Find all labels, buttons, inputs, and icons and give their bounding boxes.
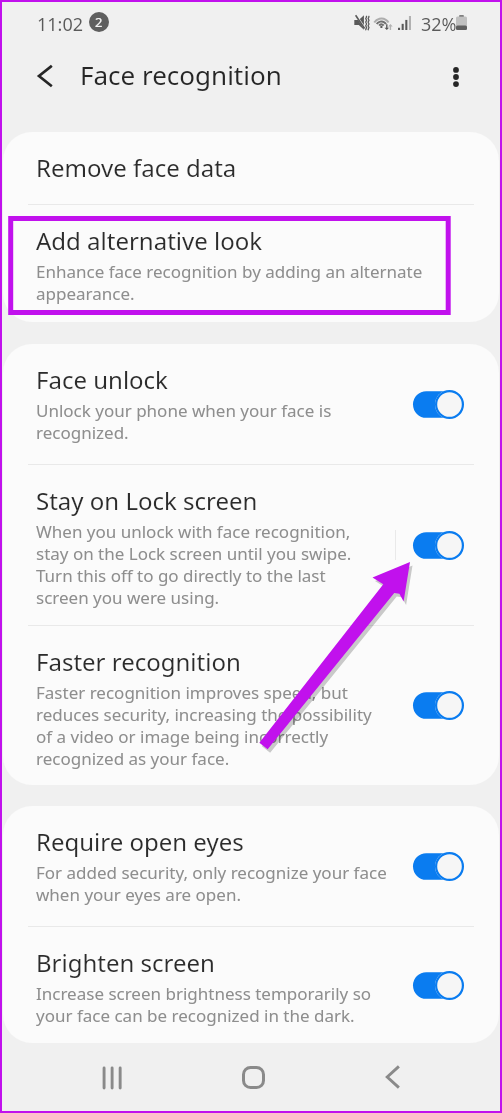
staticText: Enhance face recognition by adding an al… bbox=[36, 261, 423, 305]
button[interactable]: Face unlock bbox=[3, 344, 499, 464]
staticText: Remove face data bbox=[36, 155, 237, 183]
staticText: Unlock your phone when your face is reco… bbox=[36, 400, 332, 444]
staticText: Add alternative look bbox=[36, 228, 263, 256]
button[interactable]: Stay on Lock screen bbox=[3, 465, 499, 625]
staticText: Brighten screen bbox=[36, 950, 215, 978]
button[interactable]: Toggle switch, on bbox=[413, 691, 464, 720]
staticText: Faster recognition improves speed, but r… bbox=[36, 682, 372, 770]
button[interactable]: Toggle switch, on bbox=[413, 971, 464, 1000]
button[interactable]: Require open eyes bbox=[3, 806, 499, 926]
staticText: When you unlock with face recognition, s… bbox=[36, 521, 352, 609]
button[interactable]: More options bbox=[434, 55, 478, 99]
button[interactable]: Toggle switch, on bbox=[413, 390, 464, 419]
staticText: 32% bbox=[421, 12, 457, 37]
button[interactable]: Remove face data bbox=[3, 132, 499, 204]
staticText: Stay on Lock screen bbox=[36, 488, 258, 516]
button[interactable]: Toggle switch, on bbox=[413, 852, 464, 881]
staticText: 2 bbox=[95, 13, 103, 31]
button[interactable]: Faster recognition bbox=[3, 626, 499, 785]
staticText: Require open eyes bbox=[36, 829, 244, 857]
button[interactable]: Navigate up bbox=[23, 54, 67, 98]
staticText: Face unlock bbox=[36, 367, 168, 395]
button[interactable]: Home bbox=[231, 1055, 275, 1099]
button[interactable]: Recent apps bbox=[90, 1056, 134, 1100]
staticText: For added security, only recognize your … bbox=[36, 862, 387, 906]
button[interactable]: Add alternative look bbox=[3, 205, 499, 322]
staticText: Faster recognition bbox=[36, 649, 241, 677]
staticText: 11:02 bbox=[37, 12, 84, 37]
button[interactable]: Brighten screen bbox=[3, 927, 499, 1043]
button[interactable]: Back bbox=[371, 1055, 415, 1099]
button[interactable]: Toggle switch, on bbox=[413, 531, 464, 560]
staticText: Increase screen brightness temporarily s… bbox=[36, 983, 372, 1027]
staticText: Face recognition bbox=[80, 57, 282, 92]
